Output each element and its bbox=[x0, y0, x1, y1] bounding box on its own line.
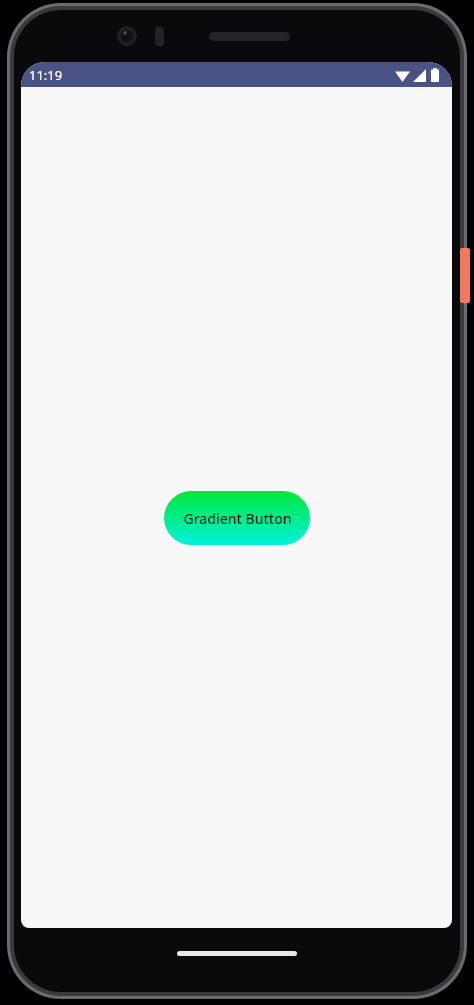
button[interactable]: Power bbox=[460, 248, 470, 303]
button[interactable]: Gradient Button bbox=[164, 491, 310, 545]
staticText: 11:19 bbox=[29, 66, 63, 84]
button[interactable]: Home bbox=[177, 951, 297, 956]
staticText: Gradient Button bbox=[183, 509, 292, 528]
